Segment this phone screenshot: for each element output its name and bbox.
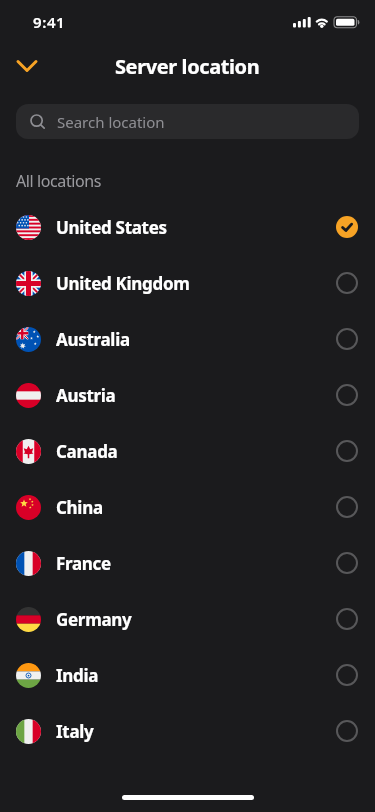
button[interactable]: Australia xyxy=(0,311,375,367)
staticText: Canada xyxy=(56,440,118,463)
staticText: United Kingdom xyxy=(56,272,190,295)
staticText: Australia xyxy=(56,328,130,351)
staticText: Germany xyxy=(56,608,132,631)
button[interactable]: China xyxy=(0,479,375,535)
staticText: Italy xyxy=(56,720,94,743)
staticText: Austria xyxy=(56,384,116,407)
staticText: United States xyxy=(56,216,167,239)
button[interactable]: Italy xyxy=(0,703,375,759)
button[interactable]: Germany xyxy=(0,591,375,647)
staticText: China xyxy=(56,496,103,519)
button[interactable]: India xyxy=(0,647,375,703)
button[interactable]: Austria xyxy=(0,367,375,423)
button[interactable]: France xyxy=(0,535,375,591)
button[interactable]: Search location xyxy=(16,104,359,139)
staticText: All locations xyxy=(16,170,102,192)
staticText: India xyxy=(56,664,99,687)
staticText: 9:41 xyxy=(33,12,66,32)
staticText: Server location xyxy=(115,53,260,80)
staticText: Search location xyxy=(57,112,165,132)
staticText: France xyxy=(56,552,111,575)
button[interactable] xyxy=(14,56,40,76)
button[interactable]: United Kingdom xyxy=(0,255,375,311)
button[interactable]: United States xyxy=(0,199,375,255)
button[interactable]: Canada xyxy=(0,423,375,479)
